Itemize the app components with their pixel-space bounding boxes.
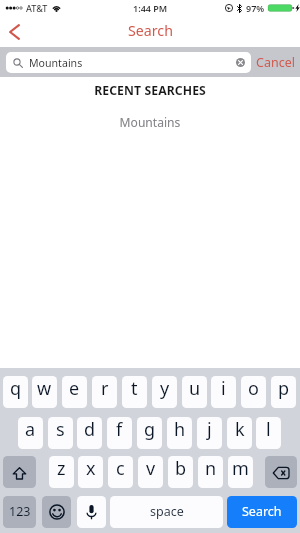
button[interactable]: u: [182, 376, 207, 408]
button[interactable]: Shift: [3, 456, 36, 488]
button[interactable]: q: [3, 376, 28, 408]
staticText: x: [86, 456, 96, 481]
button[interactable]: 123: [3, 496, 36, 528]
button[interactable]: y: [152, 376, 177, 408]
staticText: r: [101, 376, 109, 401]
staticText: Search: [242, 503, 282, 520]
button[interactable]: Mountains: [6, 52, 251, 73]
button[interactable]: r: [92, 376, 117, 408]
button[interactable]: z: [49, 456, 74, 488]
button[interactable]: Mountains: [0, 114, 300, 130]
staticText: z: [57, 456, 66, 481]
button[interactable]: m: [228, 456, 253, 488]
button[interactable]: Cancel: [251, 47, 300, 77]
staticText: p: [278, 376, 290, 401]
staticText: Cancel: [256, 54, 295, 71]
staticText: e: [69, 376, 80, 401]
staticText: g: [144, 417, 156, 442]
button[interactable]: c: [108, 456, 133, 488]
staticText: l: [266, 417, 271, 442]
button[interactable]: n: [198, 456, 223, 488]
button[interactable]: a: [18, 417, 43, 449]
button[interactable]: Back: [1, 16, 27, 47]
button[interactable]: Emoji: [42, 496, 71, 528]
staticText: v: [146, 456, 156, 481]
staticText: h: [174, 417, 186, 442]
staticText: space: [150, 503, 184, 520]
staticText: y: [160, 376, 170, 401]
staticText: c: [116, 456, 125, 481]
button[interactable]: o: [241, 376, 266, 408]
button[interactable]: d: [77, 417, 102, 449]
button[interactable]: space: [110, 496, 223, 528]
staticText: Search: [128, 21, 173, 40]
staticText: 97%: [246, 2, 265, 14]
button[interactable]: p: [271, 376, 296, 408]
staticText: f: [116, 417, 123, 442]
button[interactable]: i: [211, 376, 236, 408]
button[interactable]: s: [48, 417, 73, 449]
button[interactable]: e: [62, 376, 87, 408]
staticText: i: [221, 376, 226, 401]
button[interactable]: k: [227, 417, 252, 449]
button[interactable]: w: [32, 376, 57, 408]
button[interactable]: g: [137, 417, 162, 449]
staticText: Mountains: [0, 114, 300, 130]
staticText: d: [84, 417, 96, 442]
button[interactable]: l: [256, 417, 281, 449]
button[interactable]: f: [107, 417, 132, 449]
staticText: s: [56, 417, 65, 442]
staticText: m: [232, 456, 249, 481]
button[interactable]: h: [167, 417, 192, 449]
button[interactable]: Search: [227, 496, 297, 528]
staticText: w: [37, 376, 52, 401]
button[interactable]: Backspace: [265, 456, 297, 488]
staticText: a: [25, 417, 36, 442]
staticText: k: [235, 417, 245, 442]
button[interactable]: v: [138, 456, 163, 488]
staticText: b: [175, 456, 187, 481]
staticText: q: [10, 376, 22, 401]
button[interactable]: Clear text: [232, 54, 249, 71]
button[interactable]: Dictate: [77, 496, 106, 528]
staticText: j: [207, 417, 212, 442]
staticText: o: [248, 376, 259, 401]
staticText: n: [205, 456, 217, 481]
staticText: RECENT SEARCHES: [0, 82, 300, 99]
button[interactable]: t: [122, 376, 147, 408]
button[interactable]: x: [78, 456, 103, 488]
staticText: u: [189, 376, 201, 401]
staticText: 123: [9, 503, 31, 520]
staticText: 1:44 PM: [133, 2, 168, 14]
staticText: AT&T: [26, 2, 48, 14]
staticText: t: [131, 376, 138, 401]
staticText: Mountains: [29, 56, 83, 70]
button[interactable]: j: [197, 417, 222, 449]
button[interactable]: b: [168, 456, 193, 488]
